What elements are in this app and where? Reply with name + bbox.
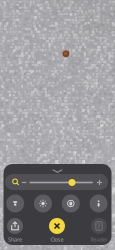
button[interactable]: Reader bbox=[90, 218, 107, 243]
button[interactable]: Brightness bbox=[34, 194, 52, 212]
button[interactable]: Flashlight bbox=[6, 194, 24, 212]
button[interactable]: Collapse controls bbox=[40, 165, 74, 177]
staticText: Share bbox=[8, 236, 22, 243]
button[interactable]: Zoom out bbox=[19, 177, 29, 188]
staticText: Reader bbox=[90, 236, 107, 243]
button[interactable]: Contrast bbox=[62, 194, 80, 212]
button[interactable]: Share bbox=[7, 218, 23, 243]
button[interactable]: Zoom in bbox=[94, 177, 105, 188]
button[interactable]: Filters bbox=[90, 194, 108, 212]
button[interactable]: Zoom bbox=[9, 175, 23, 189]
staticText: Close bbox=[50, 236, 63, 243]
button[interactable]: Close bbox=[49, 218, 65, 243]
